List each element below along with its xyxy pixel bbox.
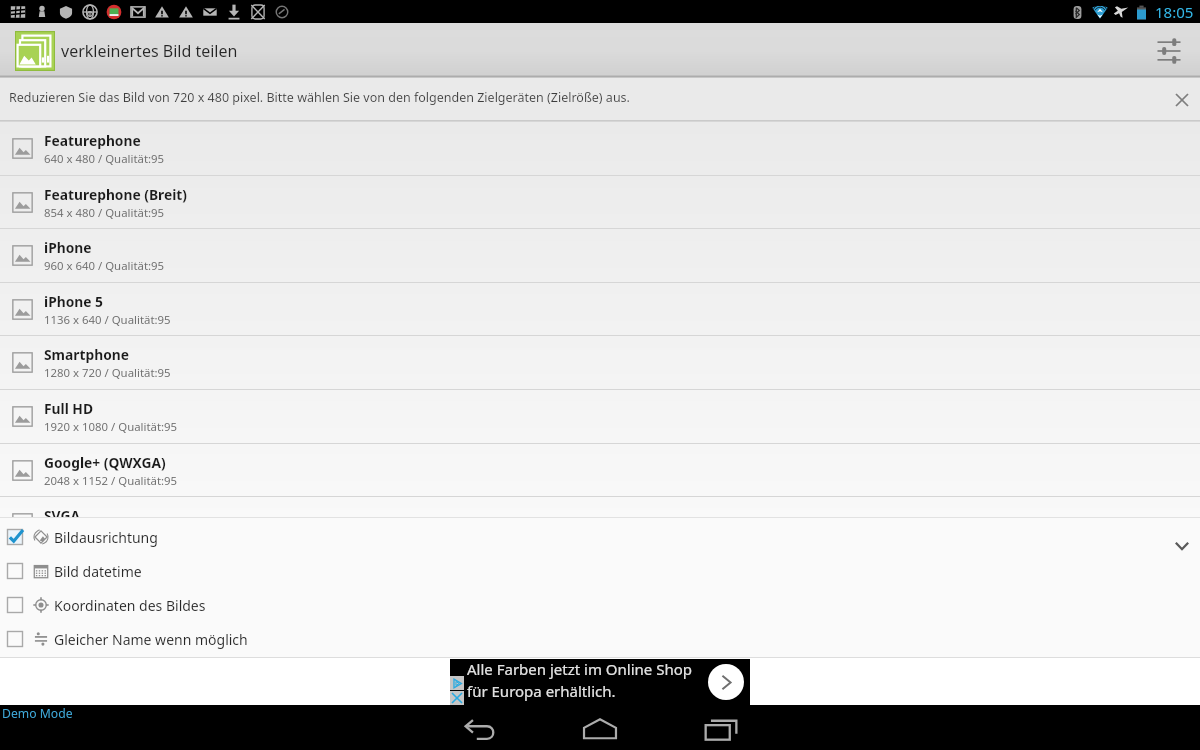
staticText: 1920 x 1080 / Qualität:95: [44, 419, 178, 435]
button[interactable]: Full HD: [0, 389, 1200, 443]
button[interactable]: Mehr anzeigen: [1165, 529, 1199, 563]
staticText: Smartphone: [44, 345, 129, 364]
staticText: Reduzieren Sie das Bild von 720 x 480 pi…: [9, 89, 630, 106]
button[interactable]: Koordinaten des Bildes: [0, 588, 1200, 622]
button[interactable]: Bildausrichtung: [0, 520, 1200, 554]
staticText: iPhone: [44, 238, 92, 257]
staticText: Koordinaten des Bildes: [54, 596, 206, 615]
staticText: Demo Mode: [2, 705, 73, 722]
staticText: Full HD: [44, 399, 94, 418]
staticText: 800 x 600 / Qualität:95: [44, 526, 165, 542]
button[interactable]: Google+ (QWXGA): [0, 443, 1200, 497]
staticText: verkleinertes Bild teilen: [61, 40, 238, 62]
staticText: 1136 x 640 / Qualität:95: [44, 312, 171, 328]
button[interactable]: iPhone 5: [0, 282, 1200, 336]
button[interactable]: Übersicht: [661, 705, 781, 750]
button[interactable]: SVGA: [0, 496, 1200, 550]
staticText: 18:05: [1155, 2, 1194, 22]
staticText: Alle Farben jetzt im Online Shop: [467, 659, 693, 679]
staticText: 640 x 480 / Qualität:95: [44, 151, 165, 167]
staticText: Bild datetime: [54, 562, 142, 581]
staticText: Bildausrichtung: [54, 528, 158, 547]
button[interactable]: Alle Farben jetzt im Online Shop: [450, 659, 750, 705]
staticText: Featurephone: [44, 131, 141, 150]
staticText: SVGA: [44, 506, 80, 525]
staticText: 2048 x 1152 / Qualität:95: [44, 473, 178, 489]
button[interactable]: Featurephone: [0, 121, 1200, 175]
button[interactable]: Startseite: [540, 705, 660, 750]
staticText: Google+ (QWXGA): [44, 453, 166, 472]
staticText: 1280 x 720 / Qualität:95: [44, 365, 171, 381]
button[interactable]: Einstellungen: [1142, 24, 1196, 78]
button[interactable]: Smartphone: [0, 335, 1200, 389]
staticText: Gleicher Name wenn möglich: [54, 630, 248, 649]
staticText: für Europa erhältlich.: [467, 681, 616, 701]
staticText: 960 x 640 / Qualität:95: [44, 258, 165, 274]
staticText: iPhone 5: [44, 292, 103, 311]
staticText: Featurephone (Breit): [44, 185, 188, 204]
button[interactable]: Gleicher Name wenn möglich: [0, 622, 1200, 656]
button[interactable]: Zurück: [420, 705, 540, 750]
button[interactable]: Schließen: [1169, 87, 1195, 113]
button[interactable]: Featurephone (Breit): [0, 175, 1200, 229]
staticText: 854 x 480 / Qualität:95: [44, 205, 165, 221]
button[interactable]: iPhone: [0, 228, 1200, 282]
button[interactable]: Bild datetime: [0, 554, 1200, 588]
